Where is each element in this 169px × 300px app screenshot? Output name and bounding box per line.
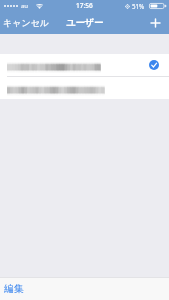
- staticText: 編集: [4, 283, 24, 295]
- button[interactable]: Add: [142, 15, 169, 31]
- button[interactable]: [0, 77, 169, 99]
- button[interactable]: [0, 54, 169, 76]
- staticText: キャンセル: [3, 17, 50, 28]
- button[interactable]: 編集: [0, 280, 29, 299]
- button[interactable]: キャンセル: [0, 14, 53, 31]
- staticText: au: [21, 2, 29, 10]
- staticText: 17:56: [76, 1, 93, 10]
- staticText: ユーザー: [66, 17, 104, 29]
- staticText: 51%: [132, 2, 145, 10]
